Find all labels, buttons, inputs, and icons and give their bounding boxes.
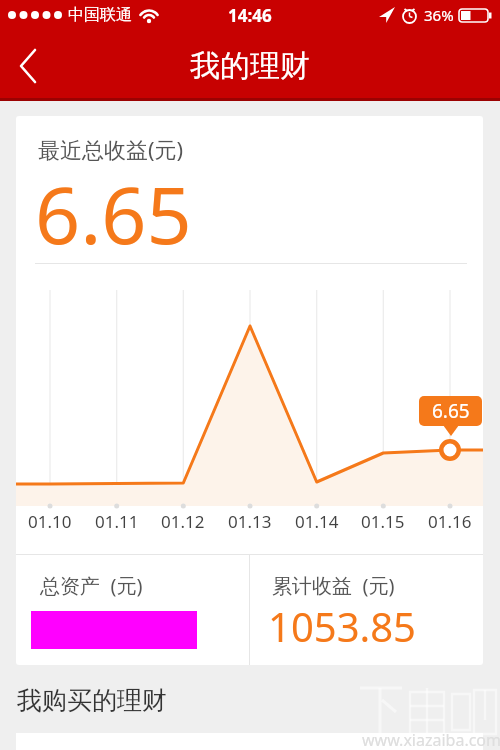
button[interactable]	[16, 733, 483, 750]
staticText: 14:46	[228, 4, 272, 27]
staticText: 中国联通	[68, 5, 132, 25]
staticText: 01.16	[428, 510, 472, 532]
button[interactable]	[0, 30, 56, 101]
staticText: 01.12	[161, 510, 205, 532]
staticText: 36%	[424, 5, 454, 25]
staticText: 01.13	[228, 510, 272, 532]
staticText: 总资产 (元)	[40, 572, 143, 599]
staticText: 6.65	[432, 398, 470, 424]
staticText: 我购买的理财	[17, 685, 167, 716]
staticText: 我的理财	[190, 47, 310, 85]
staticText: 01.10	[28, 510, 72, 532]
staticText: 累计收益 (元)	[272, 572, 395, 599]
staticText: 6.65	[35, 160, 192, 268]
staticText: 01.15	[361, 510, 405, 532]
button[interactable]: 总资产 (元)	[16, 554, 249, 665]
staticText: 1053.85	[268, 599, 416, 653]
staticText: 01.11	[95, 510, 139, 532]
button[interactable]: 累计收益 (元)	[249, 554, 483, 665]
staticText: 最近总收益(元)	[38, 134, 184, 164]
staticText: 01.14	[295, 510, 339, 532]
staticText: www.xiazaiba.com	[362, 729, 500, 750]
